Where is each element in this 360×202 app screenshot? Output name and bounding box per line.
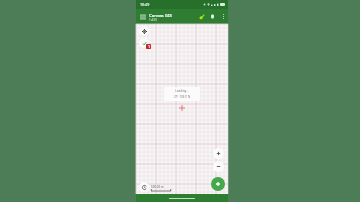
button[interactable]: Center on my location — [139, 26, 149, 36]
button[interactable]: History — [139, 182, 149, 192]
staticText: 500.00 m — [151, 185, 164, 189]
button[interactable]: Zoom out — [213, 161, 224, 172]
button[interactable]: Open navigation menu — [136, 9, 149, 24]
staticText: 1 — [148, 45, 150, 49]
button[interactable]: Zoom in — [213, 148, 224, 159]
staticText: 10:49 — [140, 2, 150, 7]
button[interactable]: GPS status — [207, 9, 218, 24]
button[interactable]: Add new feature — [211, 177, 225, 191]
staticText: Loading... — [166, 89, 198, 93]
staticText: 37° 103.5' N — [166, 95, 198, 99]
button[interactable]: More options — [218, 9, 228, 24]
button[interactable]: Loading... — [164, 87, 200, 101]
button[interactable]: Layer visibility — [139, 38, 149, 48]
staticText: 1:433 — [149, 18, 157, 22]
button[interactable]: Satellite signal — [196, 9, 207, 24]
staticText: Canvas GIS — [149, 12, 172, 18]
